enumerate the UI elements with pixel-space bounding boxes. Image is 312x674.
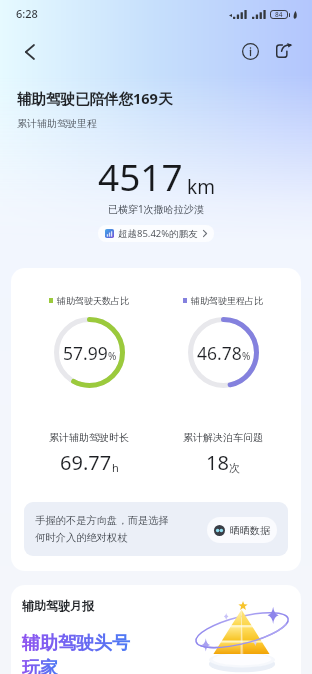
staticText: % xyxy=(108,349,117,363)
button[interactable]: Back xyxy=(12,35,46,69)
staticText: 6:28 xyxy=(16,6,38,21)
staticText: 84 xyxy=(275,10,283,19)
staticText: 辅助驾驶天数占比 xyxy=(57,295,129,306)
button[interactable]: Info xyxy=(238,39,262,63)
staticText: 超越85.42%的鹏友 xyxy=(118,227,198,240)
staticText: 46.78 xyxy=(197,341,242,365)
button[interactable]: 晒晒数据 xyxy=(207,517,277,543)
staticText: 次 xyxy=(229,461,240,475)
staticText: 玩家 xyxy=(22,657,58,674)
button[interactable]: 超越85.42%的鹏友 xyxy=(98,225,214,242)
staticText: % xyxy=(242,349,251,363)
staticText: 69.77 xyxy=(60,449,112,476)
staticText: 已横穿1次撒哈拉沙漠 xyxy=(108,202,204,216)
staticText: 累计辅助驾驶时长 xyxy=(49,431,129,444)
staticText: km xyxy=(187,174,215,200)
staticText: 57.99 xyxy=(63,341,108,365)
staticText: 累计辅助驾驶里程 xyxy=(17,117,97,130)
button[interactable]: 辅助驾驶月报 xyxy=(11,585,301,674)
staticText: 18 xyxy=(206,449,229,476)
staticText: 辅助驾驶里程占比 xyxy=(191,295,263,306)
staticText: 晒晒数据 xyxy=(230,524,270,537)
staticText: 手握的不是方向盘，而是选择 xyxy=(35,514,169,527)
staticText: h xyxy=(112,460,119,475)
staticText: 辅助驾驶月报 xyxy=(22,598,94,613)
staticText: 辅助驾驶已陪伴您169天 xyxy=(17,88,173,108)
staticText: 4517 xyxy=(98,151,183,201)
staticText: 何时介入的绝对权杖 xyxy=(35,531,128,544)
staticText: 累计解决泊车问题 xyxy=(183,431,263,444)
button[interactable]: Share xyxy=(272,38,296,62)
staticText: 辅助驾驶头号 xyxy=(22,632,130,655)
